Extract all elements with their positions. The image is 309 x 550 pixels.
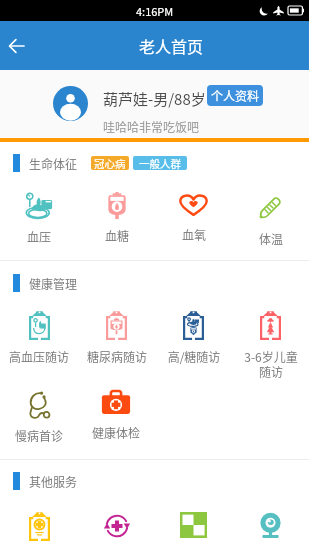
button[interactable]	[155, 512, 232, 538]
button[interactable]: 高血压随访	[0, 311, 78, 365]
staticText: 冠心病	[94, 156, 126, 170]
button[interactable]: 高/糖随访	[155, 311, 232, 365]
button[interactable]: 糖尿病随访	[78, 311, 155, 365]
button[interactable]: 葫芦娃-男/88岁	[0, 70, 309, 138]
staticText: 血压	[6, 228, 72, 245]
staticText: 哇哈哈非常吃饭吧	[103, 118, 200, 135]
staticText: 生命体征	[29, 155, 78, 172]
staticText: 一般人群	[139, 156, 181, 170]
button[interactable]: 3-6岁儿童 随访	[232, 311, 309, 380]
button[interactable]	[232, 512, 309, 539]
button[interactable]	[0, 512, 78, 541]
button[interactable]: 一般人群	[133, 156, 187, 170]
staticText: 健康管理	[29, 275, 78, 292]
staticText: 体温	[238, 230, 304, 247]
staticText: 其他服务	[29, 473, 78, 490]
button[interactable]: 慢病首诊	[0, 390, 77, 444]
staticText: 血氧	[161, 226, 227, 243]
button[interactable]: 个人资料	[207, 85, 263, 106]
staticText: 葫芦娃-男/88岁	[103, 88, 206, 110]
staticText: 高/糖随访	[161, 348, 227, 365]
staticText: 高血压随访	[6, 348, 72, 365]
button[interactable]: 冠心病	[91, 156, 129, 170]
button[interactable]: 健康体检	[77, 390, 154, 441]
staticText: 3-6岁儿童 随访	[238, 348, 304, 380]
staticText: 健康体检	[83, 424, 149, 441]
staticText: 4:16PM	[136, 3, 174, 19]
button[interactable]: 血压	[0, 192, 78, 245]
staticText: 老人首页	[139, 34, 204, 57]
button[interactable]: Back	[0, 21, 33, 70]
button[interactable]	[78, 512, 155, 540]
staticText: 慢病首诊	[6, 427, 72, 444]
staticText: 糖尿病随访	[84, 348, 150, 365]
button[interactable]: 血糖	[78, 192, 155, 244]
staticText: 个人资料	[211, 87, 260, 104]
staticText: 血糖	[84, 227, 150, 244]
button[interactable]: 体温	[232, 192, 309, 247]
button[interactable]: 血氧	[155, 192, 232, 243]
